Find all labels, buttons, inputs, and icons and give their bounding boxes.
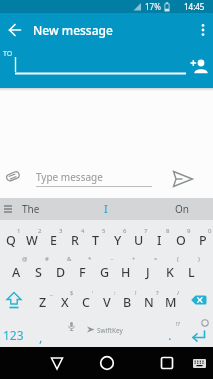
button[interactable]: I — [149, 226, 170, 254]
button[interactable] — [189, 328, 209, 346]
button[interactable]: On — [162, 199, 202, 219]
staticText: I — [104, 202, 108, 216]
button[interactable] — [188, 56, 210, 76]
button[interactable]: X — [54, 288, 75, 316]
staticText: # — [45, 255, 49, 263]
staticText: A — [12, 264, 21, 281]
staticText: 3 — [59, 227, 63, 235]
button[interactable] — [156, 352, 178, 374]
button[interactable]: M — [160, 288, 181, 316]
button[interactable]: Y — [107, 226, 128, 254]
staticText: , — [39, 328, 43, 346]
button[interactable]: F — [72, 258, 93, 286]
staticText: = — [154, 255, 158, 263]
staticText: D — [56, 264, 66, 281]
button[interactable]: J — [137, 258, 158, 286]
button[interactable] — [3, 290, 25, 314]
staticText: + — [132, 255, 136, 263]
staticText: F — [79, 264, 86, 281]
staticText: 17% — [145, 1, 161, 12]
staticText: ) — [198, 255, 200, 263]
button[interactable]: . — [164, 326, 176, 344]
staticText: N — [144, 294, 154, 311]
staticText: H — [121, 264, 131, 281]
button[interactable]: H — [115, 258, 136, 286]
button[interactable]: S — [28, 258, 49, 286]
button[interactable] — [189, 293, 209, 309]
staticText: / — [177, 289, 180, 297]
staticText: - — [111, 255, 113, 263]
button[interactable]: V — [96, 288, 117, 316]
button[interactable]: 123 — [0, 325, 28, 345]
button[interactable]: Q — [0, 226, 21, 254]
staticText: $ — [70, 289, 74, 297]
button[interactable]: A — [6, 258, 27, 286]
button[interactable]: , — [34, 327, 48, 347]
staticText: 14:45 — [184, 1, 205, 12]
button[interactable] — [192, 355, 207, 371]
button[interactable]: B — [117, 288, 138, 316]
staticText: ? — [156, 289, 159, 297]
staticText: V — [103, 294, 111, 311]
staticText: @ — [22, 255, 28, 263]
staticText: . — [168, 326, 172, 344]
staticText: Type message — [36, 170, 103, 184]
staticText: 2 — [38, 227, 42, 235]
staticText: U — [134, 232, 144, 249]
staticText: L — [188, 264, 195, 281]
staticText: SwiftKey — [97, 326, 123, 335]
staticText: 6 — [123, 227, 127, 235]
staticText: B — [123, 294, 132, 311]
button[interactable] — [170, 168, 196, 190]
staticText: G — [100, 264, 110, 281]
button[interactable] — [0, 163, 213, 198]
staticText: 1 — [17, 227, 21, 235]
staticText: * — [88, 255, 92, 263]
staticText: T — [92, 232, 100, 249]
staticText: 4 — [81, 227, 85, 235]
staticText: The — [22, 202, 40, 216]
staticText: : — [114, 289, 116, 297]
staticText: 7 — [144, 227, 148, 235]
staticText: J — [146, 264, 150, 281]
staticText: R — [71, 232, 79, 249]
staticText: ! — [135, 289, 137, 297]
button[interactable]: The — [11, 199, 51, 219]
staticText: O — [176, 232, 186, 249]
staticText: X — [61, 294, 69, 311]
staticText: S — [35, 264, 42, 281]
staticText: E — [50, 232, 57, 249]
staticText: 5 — [102, 227, 106, 235]
button[interactable]: W — [21, 226, 42, 254]
button[interactable]: E — [43, 226, 64, 254]
staticText: & — [67, 255, 72, 263]
button[interactable]: I — [91, 199, 121, 219]
button[interactable]: N — [138, 288, 159, 316]
staticText: I — [157, 232, 162, 249]
button[interactable] — [55, 318, 159, 347]
staticText: 8 — [166, 227, 170, 235]
button[interactable]: O — [170, 226, 191, 254]
button[interactable]: Z — [32, 288, 53, 316]
staticText: K — [166, 264, 174, 281]
staticText: !? — [176, 320, 181, 328]
staticText: 123 — [3, 327, 24, 343]
staticText: Y — [114, 232, 122, 249]
staticText: ' — [92, 289, 94, 297]
button[interactable] — [96, 352, 118, 374]
button[interactable]: K — [159, 258, 180, 286]
button[interactable]: L — [181, 258, 202, 286]
button[interactable]: R — [64, 226, 85, 254]
button[interactable]: U — [128, 226, 149, 254]
button[interactable] — [6, 21, 24, 39]
staticText: TO — [3, 49, 13, 59]
button[interactable]: C — [75, 288, 96, 316]
button[interactable]: P — [192, 226, 213, 254]
button[interactable] — [46, 352, 68, 374]
staticText: C — [82, 294, 90, 311]
staticText: Q — [6, 232, 16, 249]
button[interactable]: T — [85, 226, 106, 254]
button[interactable] — [196, 21, 210, 39]
button[interactable]: D — [50, 258, 71, 286]
button[interactable]: G — [94, 258, 115, 286]
